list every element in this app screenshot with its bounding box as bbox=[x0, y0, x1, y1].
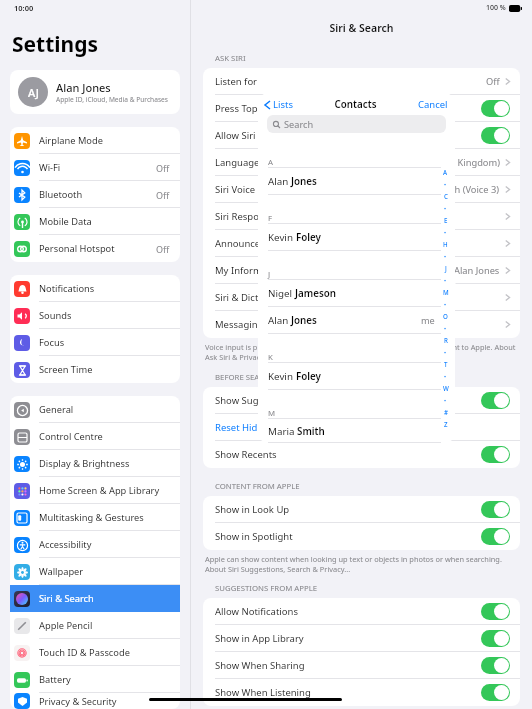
button[interactable]: Home Screen & App Library bbox=[10, 477, 180, 504]
button[interactable]: Siri Voice bbox=[203, 176, 520, 203]
staticText: C bbox=[444, 192, 448, 200]
staticText: O bbox=[443, 312, 448, 320]
button[interactable]: Show Suggestions bbox=[203, 387, 520, 414]
button[interactable]: Nigel bbox=[258, 280, 455, 307]
staticText: Foley bbox=[296, 231, 321, 244]
staticText: • bbox=[444, 349, 447, 356]
button[interactable] bbox=[481, 446, 510, 463]
staticText: Off bbox=[156, 162, 170, 174]
button[interactable]: Siri & Search bbox=[10, 585, 180, 612]
button[interactable]: AJ bbox=[10, 70, 180, 114]
staticText: Alan Jones bbox=[454, 264, 500, 277]
staticText: Bluetooth bbox=[39, 188, 156, 201]
staticText: • bbox=[444, 181, 447, 188]
button[interactable]: Battery bbox=[10, 666, 180, 693]
button[interactable] bbox=[481, 657, 510, 674]
staticText: Off bbox=[156, 189, 170, 201]
staticText: Jones bbox=[291, 314, 317, 327]
staticText: Contacts bbox=[293, 98, 418, 111]
button[interactable]: Kevin bbox=[258, 224, 455, 251]
button[interactable] bbox=[481, 127, 510, 144]
button[interactable]: Cancel bbox=[418, 98, 448, 111]
staticText: Cancel bbox=[418, 98, 448, 111]
staticText: Display & Brightness bbox=[39, 457, 170, 470]
staticText: Apple ID, iCloud, Media & Purchases bbox=[56, 95, 168, 104]
staticText: Listen for bbox=[215, 75, 486, 88]
button[interactable]: Siri Responses bbox=[203, 203, 520, 230]
staticText: Home Screen & App Library bbox=[39, 484, 170, 497]
staticText: M bbox=[268, 408, 276, 419]
staticText: me bbox=[421, 314, 435, 327]
staticText: Allow Notifications bbox=[215, 605, 481, 618]
button[interactable]: Siri & Dictation History bbox=[203, 284, 520, 311]
button[interactable] bbox=[481, 603, 510, 620]
staticText: H bbox=[443, 240, 448, 248]
staticText: Announce Calls bbox=[215, 237, 505, 250]
button[interactable]: General bbox=[10, 396, 180, 423]
button[interactable]: Sounds bbox=[10, 302, 180, 329]
button[interactable]: Alan bbox=[258, 307, 455, 334]
button[interactable]: Messaging with Siri bbox=[203, 311, 520, 338]
staticText: Press Top Button for Siri bbox=[215, 102, 481, 115]
staticText: Alan bbox=[268, 314, 291, 327]
staticText: BEFORE SEARCHING bbox=[215, 372, 290, 383]
button[interactable]: Show Recents bbox=[203, 441, 520, 468]
button[interactable] bbox=[481, 630, 510, 647]
staticText: Wi-Fi bbox=[39, 161, 156, 174]
button[interactable]: Kevin bbox=[258, 363, 455, 390]
staticText: Lists bbox=[273, 98, 293, 111]
button[interactable]: Show When Sharing bbox=[203, 652, 520, 679]
staticText: British (Voice 3) bbox=[432, 183, 500, 196]
button[interactable]: Display & Brightness bbox=[10, 450, 180, 477]
button[interactable]: Focus bbox=[10, 329, 180, 356]
button[interactable]: Bluetooth bbox=[10, 181, 180, 208]
button[interactable]: Reset Hidden Suggestions bbox=[203, 414, 520, 441]
staticText: Accessibility bbox=[39, 538, 170, 551]
staticText: Privacy & Security bbox=[39, 695, 170, 708]
button[interactable] bbox=[481, 392, 510, 409]
button[interactable]: Maria bbox=[258, 419, 455, 443]
button[interactable]: Show in Look Up bbox=[203, 496, 520, 523]
button[interactable]: Search bbox=[267, 115, 446, 133]
button[interactable]: Wallpaper bbox=[10, 558, 180, 585]
button[interactable]: My Information bbox=[203, 257, 520, 284]
button[interactable]: Notifications bbox=[10, 275, 180, 302]
button[interactable]: Listen for bbox=[203, 68, 520, 95]
staticText: Show Suggestions bbox=[215, 394, 481, 407]
staticText: M bbox=[443, 288, 449, 296]
staticText: Screen Time bbox=[39, 363, 170, 376]
button[interactable] bbox=[481, 501, 510, 518]
button[interactable]: Multitasking & Gestures bbox=[10, 504, 180, 531]
staticText: Airplane Mode bbox=[39, 134, 170, 147]
button[interactable]: Airplane Mode bbox=[10, 127, 180, 154]
staticText: E bbox=[444, 216, 448, 224]
button[interactable]: Press Top Button for Siri bbox=[203, 95, 520, 122]
button[interactable] bbox=[481, 100, 510, 117]
button[interactable]: Show When Listening bbox=[203, 679, 520, 706]
button[interactable]: Allow Siri When Locked bbox=[203, 122, 520, 149]
staticText: Kevin bbox=[268, 231, 296, 244]
button[interactable]: Language bbox=[203, 149, 520, 176]
button[interactable]: Accessibility bbox=[10, 531, 180, 558]
staticText: W bbox=[443, 384, 449, 392]
button[interactable]: Apple Pencil bbox=[10, 612, 180, 639]
staticText: • bbox=[444, 253, 447, 260]
button[interactable]: Show in Spotlight bbox=[203, 523, 520, 550]
staticText: Off bbox=[486, 75, 500, 88]
button[interactable]: Mobile Data bbox=[10, 208, 180, 235]
button[interactable]: Allow Notifications bbox=[203, 598, 520, 625]
button[interactable]: Wi-Fi bbox=[10, 154, 180, 181]
button[interactable] bbox=[481, 684, 510, 701]
button[interactable]: Privacy & Security bbox=[10, 693, 180, 709]
button[interactable]: Screen Time bbox=[10, 356, 180, 383]
staticText: J bbox=[445, 264, 447, 272]
button[interactable] bbox=[481, 528, 510, 545]
button[interactable]: Control Centre bbox=[10, 423, 180, 450]
button[interactable]: Show in App Library bbox=[203, 625, 520, 652]
button[interactable]: Alan bbox=[258, 168, 455, 195]
staticText: Wallpaper bbox=[39, 565, 170, 578]
button[interactable]: Announce Calls bbox=[203, 230, 520, 257]
button[interactable]: Lists bbox=[265, 98, 293, 111]
button[interactable]: Personal Hotspot bbox=[10, 235, 180, 262]
button[interactable]: Touch ID & Passcode bbox=[10, 639, 180, 666]
